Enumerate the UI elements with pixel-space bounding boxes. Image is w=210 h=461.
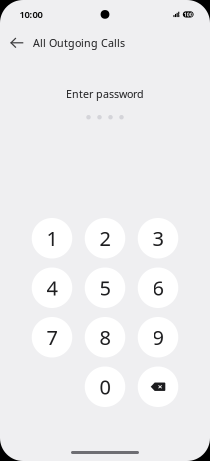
button[interactable]: 2 bbox=[85, 218, 125, 258]
button[interactable]: 0 bbox=[85, 366, 125, 407]
button[interactable]: 6 bbox=[138, 267, 178, 308]
staticText: 0 bbox=[99, 373, 110, 400]
button[interactable]: 7 bbox=[32, 317, 72, 357]
staticText: All Outgoing Calls bbox=[33, 36, 125, 50]
staticText: 7 bbox=[46, 324, 57, 351]
staticText: 4 bbox=[46, 274, 57, 301]
button[interactable]: 8 bbox=[85, 317, 125, 357]
staticText: 5 bbox=[99, 274, 110, 301]
staticText: 8 bbox=[99, 324, 110, 351]
staticText: 9 bbox=[152, 324, 163, 351]
button[interactable]: 1 bbox=[32, 218, 72, 258]
staticText: 1 bbox=[46, 225, 57, 252]
staticText: 100 bbox=[184, 11, 193, 18]
button[interactable]: 3 bbox=[138, 218, 178, 258]
button[interactable]: Delete bbox=[138, 366, 178, 407]
staticText: 6 bbox=[152, 274, 163, 301]
button[interactable]: Back bbox=[5, 30, 29, 56]
staticText: Enter password bbox=[66, 87, 144, 101]
staticText: 10:00 bbox=[19, 8, 42, 21]
staticText: 3 bbox=[152, 225, 163, 252]
button[interactable]: 9 bbox=[138, 317, 178, 357]
button[interactable]: 5 bbox=[85, 267, 125, 308]
button[interactable]: 4 bbox=[32, 267, 72, 308]
staticText: 2 bbox=[99, 225, 110, 252]
